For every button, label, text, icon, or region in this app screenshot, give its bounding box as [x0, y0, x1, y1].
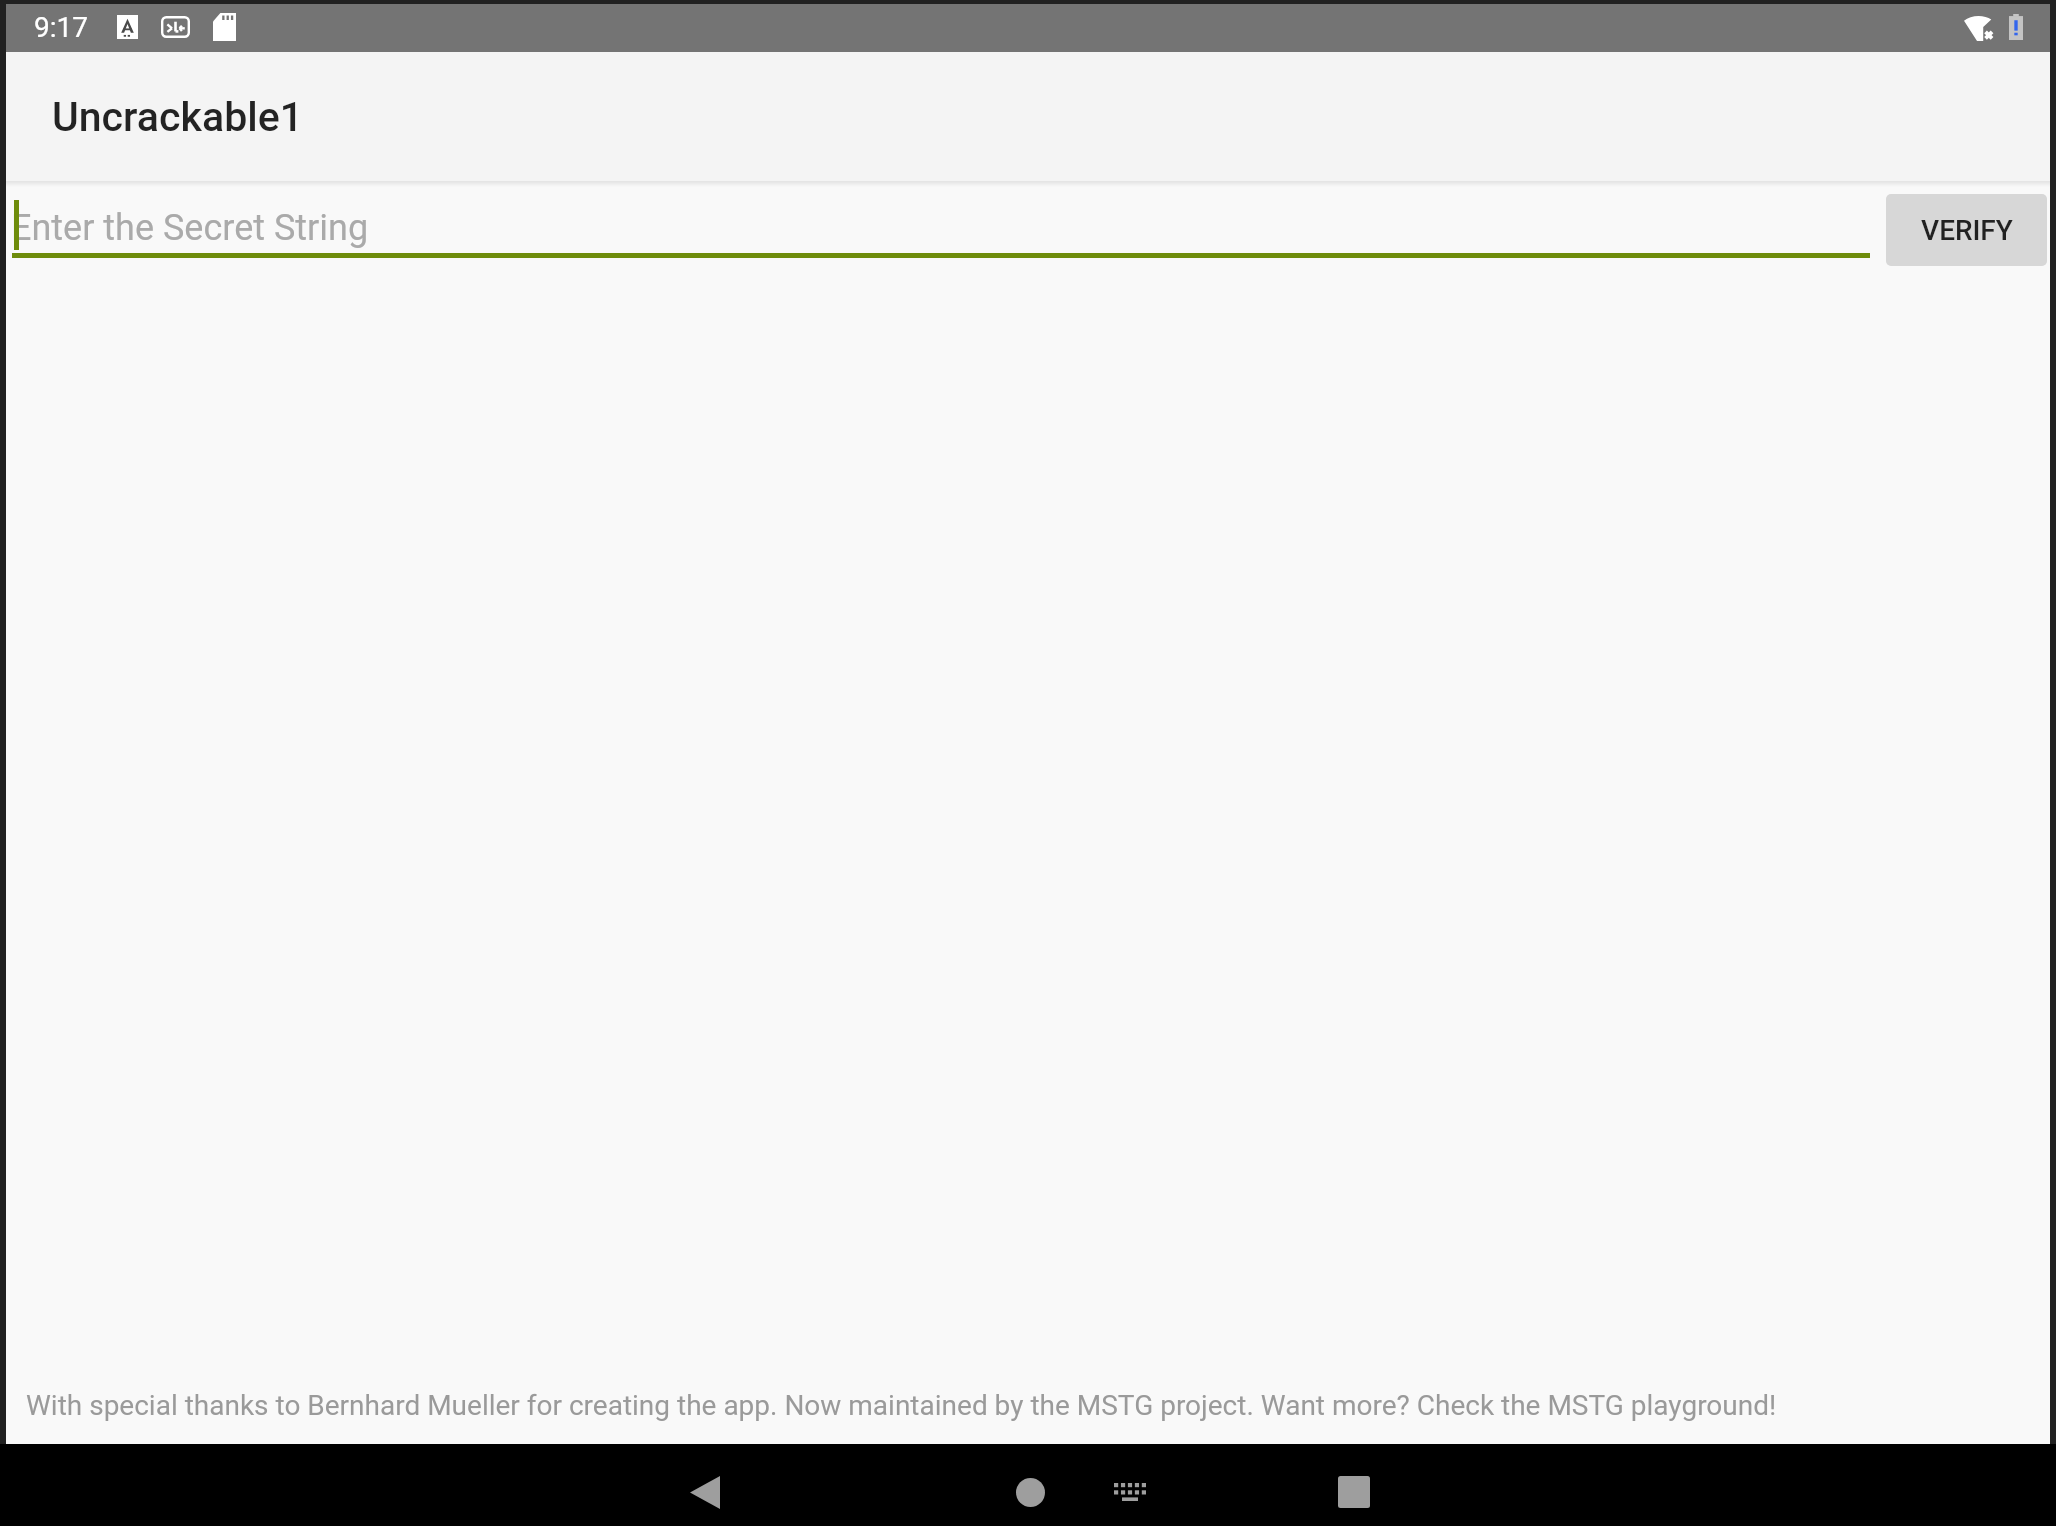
staticText: 9:17 [34, 11, 88, 44]
staticText: Enter the Secret String [11, 207, 369, 249]
button[interactable]: Back [660, 1451, 750, 1526]
button[interactable]: VERIFY [1886, 194, 2047, 266]
staticText: Uncrackable1 [52, 93, 304, 141]
button[interactable]: Recent apps [1309, 1451, 1399, 1526]
button[interactable]: Home [985, 1451, 1075, 1526]
button[interactable]: Enter the Secret String [12, 193, 1870, 258]
button[interactable]: Show keyboard [1085, 1451, 1175, 1526]
staticText: VERIFY [1921, 214, 2013, 247]
staticText: With special thanks to Bernhard Mueller … [26, 1389, 1777, 1422]
